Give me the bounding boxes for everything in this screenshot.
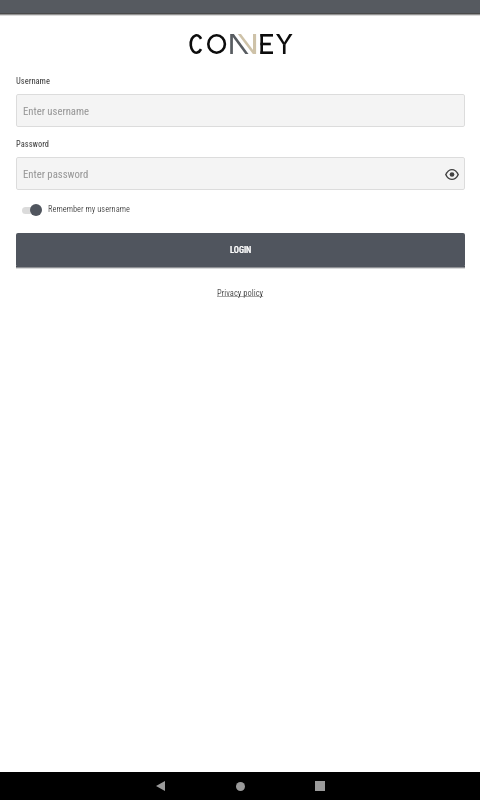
staticText: Username: [16, 76, 50, 86]
staticText: Password: [16, 139, 50, 149]
button[interactable]: Privacy policy: [217, 288, 264, 298]
staticText: Remember my username: [48, 204, 130, 214]
staticText: Enter password: [23, 168, 89, 181]
button[interactable]: Remember my username: [16, 200, 130, 218]
button[interactable]: Enter password: [16, 157, 465, 190]
button[interactable]: Back: [120, 772, 200, 800]
button[interactable]: LOGIN: [16, 233, 465, 267]
button[interactable]: Enter username: [16, 94, 465, 127]
button[interactable]: Home: [200, 772, 280, 800]
button[interactable]: Recent apps: [280, 772, 360, 800]
button[interactable]: Show password: [442, 164, 462, 184]
staticText: LOGIN: [230, 245, 252, 255]
staticText: Enter username: [23, 105, 90, 118]
